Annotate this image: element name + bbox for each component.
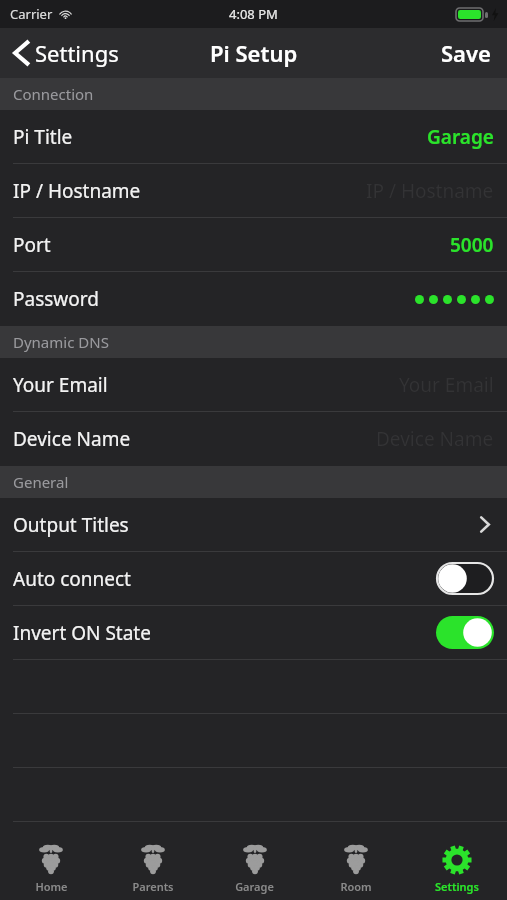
staticText: Settings [435, 879, 479, 894]
button[interactable]: Device Name [0, 412, 507, 466]
staticText: Device Name [13, 426, 131, 452]
button[interactable]: Garage [204, 838, 305, 900]
staticText: 4:08 PM [229, 5, 278, 23]
button[interactable]: Room [305, 838, 406, 900]
staticText: Connection [13, 84, 94, 104]
other: Toggle on [436, 616, 494, 649]
staticText: Parents [132, 879, 174, 894]
staticText: IP / Hostname [366, 178, 494, 204]
button[interactable]: Parents [102, 838, 204, 900]
staticText: Port [13, 232, 51, 258]
staticText: Your Email [13, 372, 108, 398]
button[interactable]: Pi Title [0, 110, 507, 164]
staticText: Garage [235, 879, 274, 894]
staticText: IP / Hostname [13, 178, 141, 204]
staticText: Invert ON State [13, 620, 151, 646]
button[interactable]: Invert ON State [0, 606, 507, 660]
staticText: Password [13, 286, 99, 312]
other: Open Output Titles [480, 516, 490, 533]
staticText: Device Name [376, 426, 494, 452]
staticText: Your Email [399, 372, 494, 398]
button[interactable]: Port [0, 218, 507, 272]
button[interactable]: Your Email [0, 358, 507, 412]
staticText: Output Titles [13, 512, 129, 538]
staticText: Pi Setup [210, 38, 298, 68]
staticText: Carrier [10, 5, 53, 23]
button[interactable]: Auto connect [0, 552, 507, 606]
button[interactable]: Output Titles [0, 498, 507, 552]
staticText: Garage [427, 124, 494, 150]
staticText: Save [441, 38, 491, 68]
other: Toggle off [436, 562, 494, 595]
staticText: Pi Title [13, 124, 73, 150]
button[interactable]: IP / Hostname [0, 164, 507, 218]
button[interactable]: Password [0, 272, 507, 326]
button[interactable]: Settings [406, 838, 507, 900]
button[interactable]: Settings [0, 28, 133, 78]
staticText: Home [35, 879, 68, 894]
staticText: General [13, 472, 69, 492]
staticText: Room [340, 879, 372, 894]
staticText: 5000 [450, 232, 494, 258]
button[interactable]: Save [425, 28, 507, 78]
button[interactable]: Home [0, 838, 102, 900]
staticText: Auto connect [13, 566, 131, 592]
staticText: Dynamic DNS [13, 332, 109, 352]
staticText: Settings [35, 38, 119, 68]
